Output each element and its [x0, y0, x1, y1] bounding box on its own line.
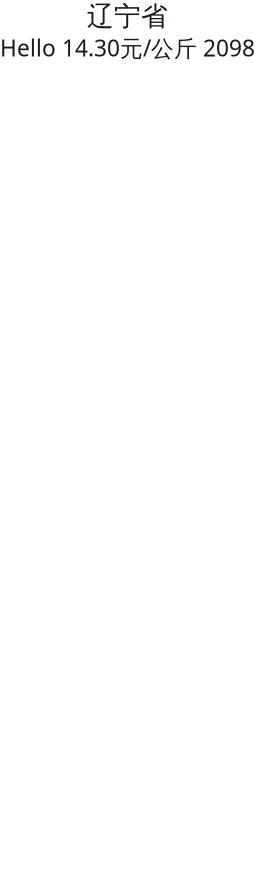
staticText: Hello 14.30元/公斤 2098: [0, 33, 255, 63]
staticText: 辽宁省: [87, 0, 168, 33]
